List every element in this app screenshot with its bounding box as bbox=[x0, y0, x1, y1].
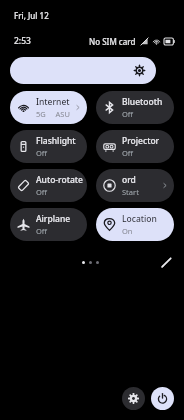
staticText: Start bbox=[122, 187, 139, 197]
button[interactable]: Power bbox=[151, 387, 174, 410]
staticText: Location bbox=[122, 213, 157, 225]
button[interactable]: Bluetooth bbox=[96, 91, 174, 124]
staticText: Off bbox=[36, 187, 48, 197]
staticText: Fri, Jul 12 bbox=[14, 10, 49, 21]
button[interactable]: Brightness bbox=[10, 57, 156, 84]
staticText: Off bbox=[122, 109, 134, 119]
staticText: Projector bbox=[122, 135, 160, 147]
staticText: On bbox=[122, 226, 133, 236]
staticText: Bluetooth bbox=[122, 96, 163, 108]
button[interactable]: Projector bbox=[96, 130, 174, 163]
button[interactable]: Flashlight bbox=[10, 130, 87, 163]
staticText: Auto-rotate bbox=[36, 174, 83, 186]
button[interactable]: Internet bbox=[10, 91, 87, 124]
staticText: Off bbox=[122, 148, 134, 158]
staticText: No SIM card bbox=[89, 36, 136, 47]
staticText: Airplane mode bbox=[36, 213, 83, 225]
button[interactable]: Auto-rotate bbox=[10, 169, 87, 202]
staticText: Off bbox=[36, 148, 48, 158]
button[interactable]: Edit tiles bbox=[157, 254, 175, 270]
staticText: 2:53 bbox=[14, 35, 31, 47]
staticText: Internet bbox=[36, 96, 70, 108]
staticText: 5G ASU bbox=[36, 109, 70, 119]
button[interactable]: ord Scre bbox=[96, 169, 174, 202]
staticText: Off bbox=[36, 226, 48, 236]
button[interactable]: Location bbox=[96, 208, 174, 241]
staticText: ord Scre bbox=[122, 174, 161, 186]
staticText: Flashlight bbox=[36, 135, 76, 147]
button[interactable]: Settings bbox=[122, 387, 145, 410]
button[interactable]: Airplane mode bbox=[10, 208, 87, 241]
